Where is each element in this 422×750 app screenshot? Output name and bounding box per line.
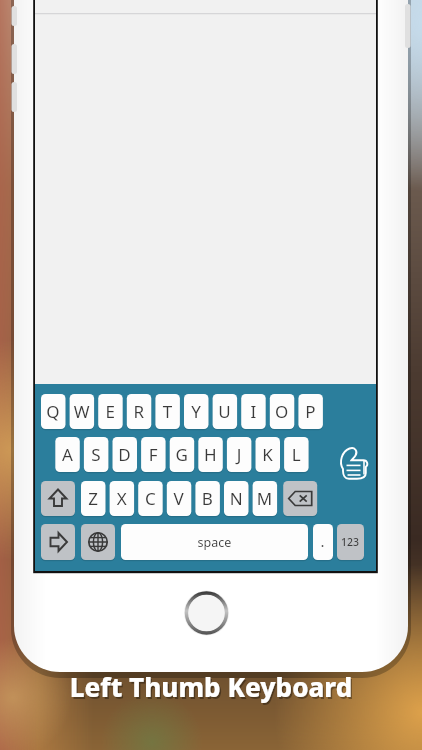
- button[interactable]: Shift: [41, 481, 75, 516]
- button[interactable]: P: [298, 394, 323, 429]
- button[interactable]: Switch hand: [41, 524, 75, 560]
- button[interactable]: Period: [313, 524, 333, 560]
- button[interactable]: N: [224, 481, 249, 516]
- button[interactable]: E: [98, 394, 123, 429]
- button[interactable]: space: [121, 524, 308, 560]
- button[interactable]: L: [284, 437, 309, 472]
- button[interactable]: O: [270, 394, 295, 429]
- button[interactable]: A: [55, 437, 80, 472]
- button[interactable]: X: [110, 481, 135, 516]
- button[interactable]: R: [127, 394, 152, 429]
- button[interactable]: S: [84, 437, 109, 472]
- button[interactable]: I: [241, 394, 266, 429]
- button[interactable]: K: [256, 437, 281, 472]
- button[interactable]: Home: [189, 591, 233, 635]
- button[interactable]: H: [198, 437, 223, 472]
- button[interactable]: Y: [184, 394, 209, 429]
- button[interactable]: G: [170, 437, 195, 472]
- button[interactable]: Z: [81, 481, 106, 516]
- button[interactable]: Q: [41, 394, 66, 429]
- button[interactable]: W: [70, 394, 95, 429]
- button[interactable]: Numbers: [337, 524, 364, 560]
- button[interactable]: B: [195, 481, 220, 516]
- button[interactable]: Backspace: [283, 481, 317, 516]
- button[interactable]: D: [113, 437, 138, 472]
- button[interactable]: J: [227, 437, 252, 472]
- button[interactable]: T: [155, 394, 180, 429]
- button[interactable]: F: [141, 437, 166, 472]
- button[interactable]: C: [138, 481, 163, 516]
- button[interactable]: Switch keyboard: [81, 524, 115, 560]
- button[interactable]: U: [213, 394, 238, 429]
- button[interactable]: V: [167, 481, 192, 516]
- button[interactable]: M: [253, 481, 278, 516]
